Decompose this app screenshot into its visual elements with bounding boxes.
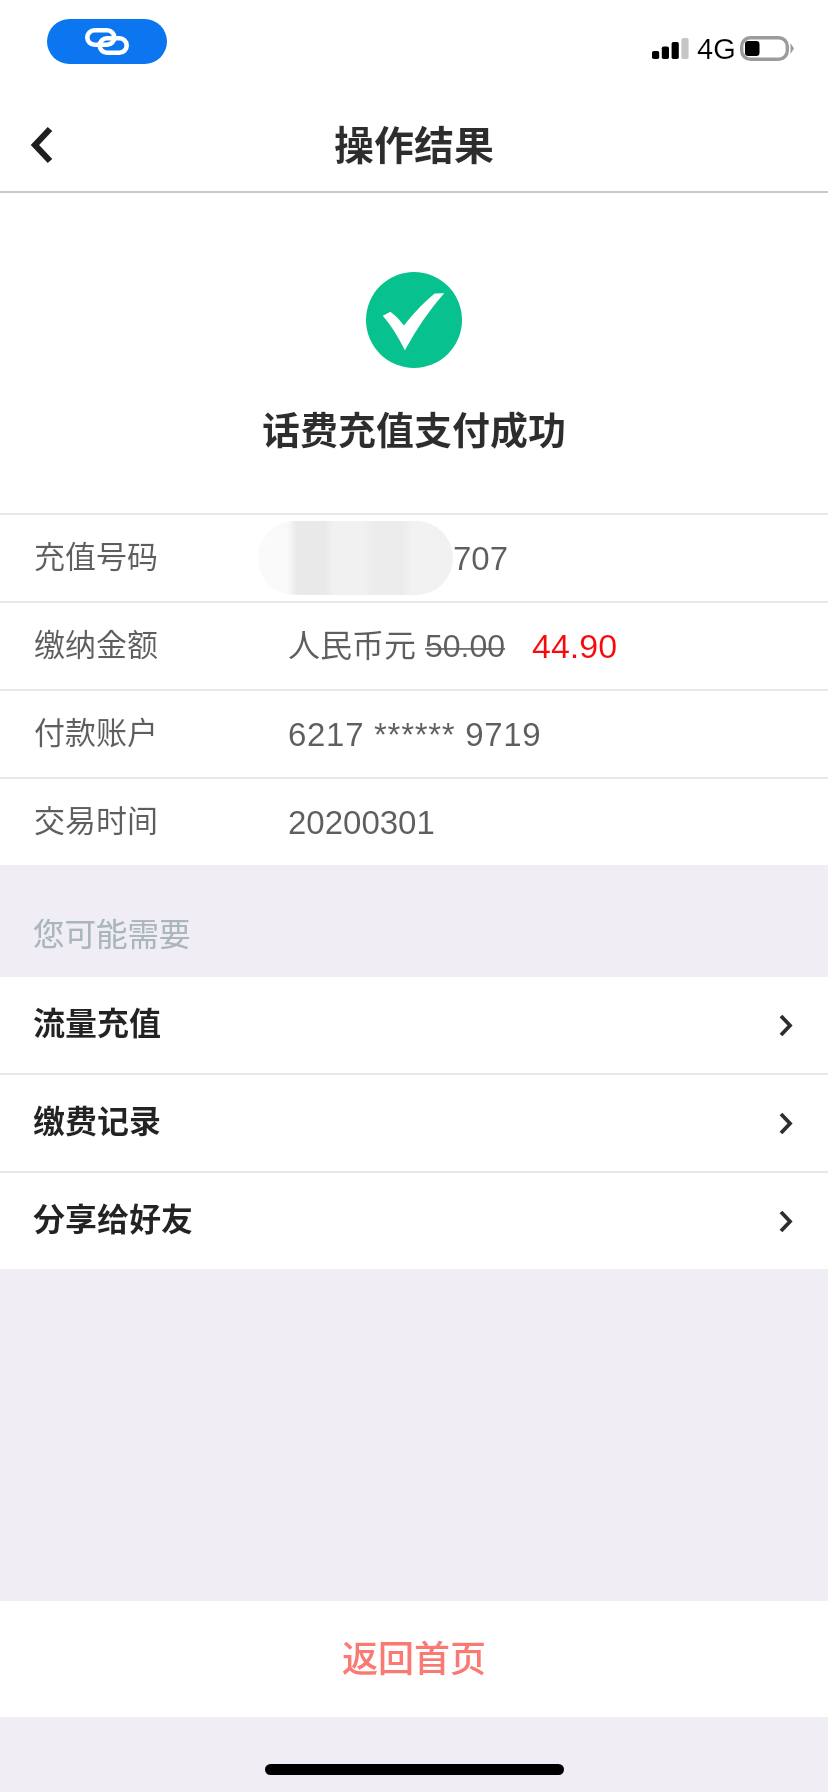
- staticText: 缴纳金额: [34, 620, 158, 665]
- staticText: 50.00: [425, 628, 506, 664]
- staticText: 分享给好友: [33, 1194, 194, 1240]
- staticText: 20200301: [288, 804, 435, 841]
- button[interactable]: Back: [0, 100, 87, 190]
- staticText: 操作结果: [334, 114, 494, 172]
- button[interactable]: 分享给好友: [0, 1173, 828, 1269]
- button[interactable]: 流量充值: [0, 977, 828, 1073]
- staticText: 44.90: [532, 627, 618, 665]
- button[interactable]: 缴费记录: [0, 1075, 828, 1171]
- staticText: 4G: [697, 33, 736, 65]
- staticText: 交易时间: [34, 796, 158, 841]
- staticText: 流量充值: [33, 998, 162, 1044]
- button[interactable]: 返回首页: [0, 1601, 828, 1717]
- staticText: 您可能需要: [33, 909, 191, 955]
- staticText: 缴费记录: [33, 1096, 162, 1142]
- staticText: 人民币元: [288, 620, 417, 666]
- staticText: 6217 ****** 9719: [288, 716, 542, 753]
- staticText: 付款账户: [34, 708, 158, 753]
- staticText: 充值号码: [34, 532, 158, 577]
- button[interactable]: Screen mirroring link: [47, 19, 167, 64]
- staticText: 话费充值支付成功: [262, 400, 567, 455]
- staticText: 707: [453, 540, 509, 577]
- staticText: 返回首页: [342, 1630, 487, 1682]
